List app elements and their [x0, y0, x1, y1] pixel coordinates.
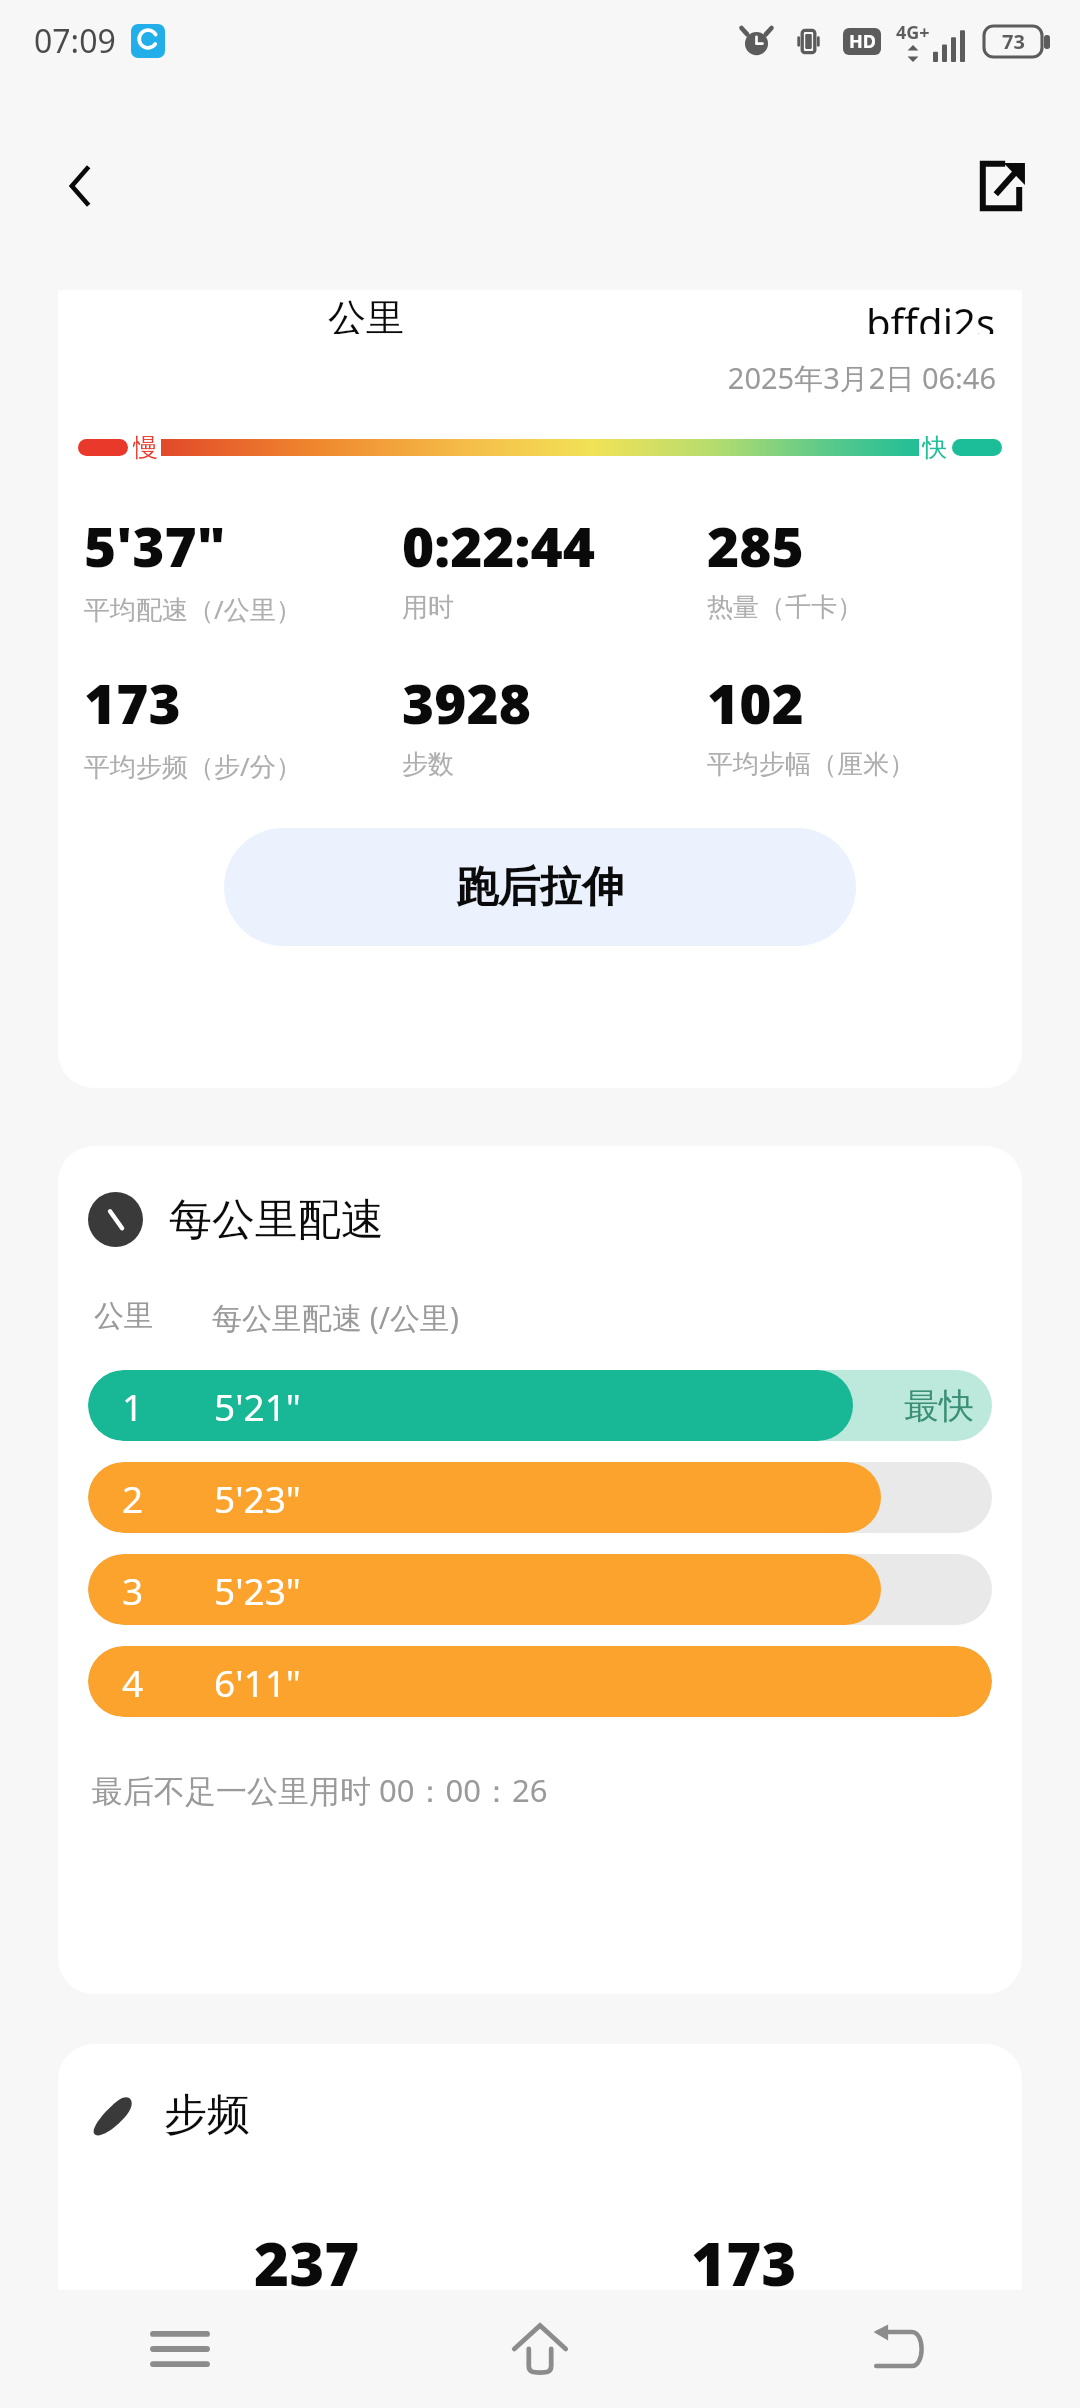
- button[interactable]: Home: [360, 2290, 720, 2408]
- staticText: 平均步频（步/分）: [84, 748, 302, 784]
- staticText: 热量（千卡）: [707, 591, 863, 624]
- staticText: 4: [122, 1657, 144, 1707]
- staticText: 平均配速（/公里）: [84, 591, 302, 627]
- button[interactable]: Share: [956, 141, 1046, 231]
- staticText: 每公里配速: [169, 1193, 384, 1247]
- staticText: 6'11": [214, 1657, 301, 1707]
- staticText: 每公里配速 (/公里): [212, 1297, 459, 1338]
- staticText: 5'23": [214, 1565, 301, 1615]
- staticText: 2025年3月2日 06:46: [58, 358, 996, 398]
- staticText: 2: [122, 1473, 144, 1523]
- staticText: 07:09: [34, 19, 116, 63]
- staticText: 用时: [402, 591, 454, 624]
- staticText: 173: [84, 665, 181, 740]
- button[interactable]: 1: [88, 1370, 992, 1441]
- staticText: 102: [707, 665, 804, 740]
- button[interactable]: Back: [38, 144, 122, 228]
- staticText: 285: [707, 508, 804, 583]
- button[interactable]: 4: [88, 1646, 992, 1717]
- button[interactable]: Back: [720, 2290, 1080, 2408]
- button[interactable]: 2: [88, 1462, 992, 1533]
- staticText: 4G+: [896, 20, 930, 45]
- staticText: 步频: [164, 2088, 250, 2142]
- staticText: 公里: [328, 294, 404, 334]
- staticText: HD: [849, 29, 876, 54]
- staticText: 快: [922, 432, 947, 462]
- staticText: 173: [691, 2222, 797, 2290]
- staticText: 3: [122, 1565, 144, 1615]
- staticText: bffdi2s: [866, 295, 996, 334]
- staticText: 3928: [402, 665, 531, 740]
- staticText: 跑后拉伸: [456, 861, 624, 914]
- staticText: 0:22:44: [402, 508, 595, 583]
- button[interactable]: 跑后拉伸: [224, 828, 856, 946]
- button[interactable]: Recent apps: [0, 2290, 360, 2408]
- staticText: 最后不足一公里用时 00：00：26: [92, 1769, 548, 1811]
- staticText: 5'23": [214, 1473, 301, 1523]
- staticText: 公里: [94, 1297, 154, 1335]
- staticText: 步数: [402, 748, 454, 781]
- staticText: 5'21": [214, 1381, 301, 1431]
- staticText: 237: [254, 2222, 360, 2290]
- staticText: 73: [1002, 28, 1025, 55]
- staticText: 1: [122, 1381, 144, 1431]
- staticText: 平均步幅（厘米）: [707, 748, 915, 781]
- staticText: 最快: [904, 1384, 974, 1428]
- staticText: 慢: [133, 432, 158, 462]
- button[interactable]: 3: [88, 1554, 992, 1625]
- staticText: 5'37": [84, 508, 226, 583]
